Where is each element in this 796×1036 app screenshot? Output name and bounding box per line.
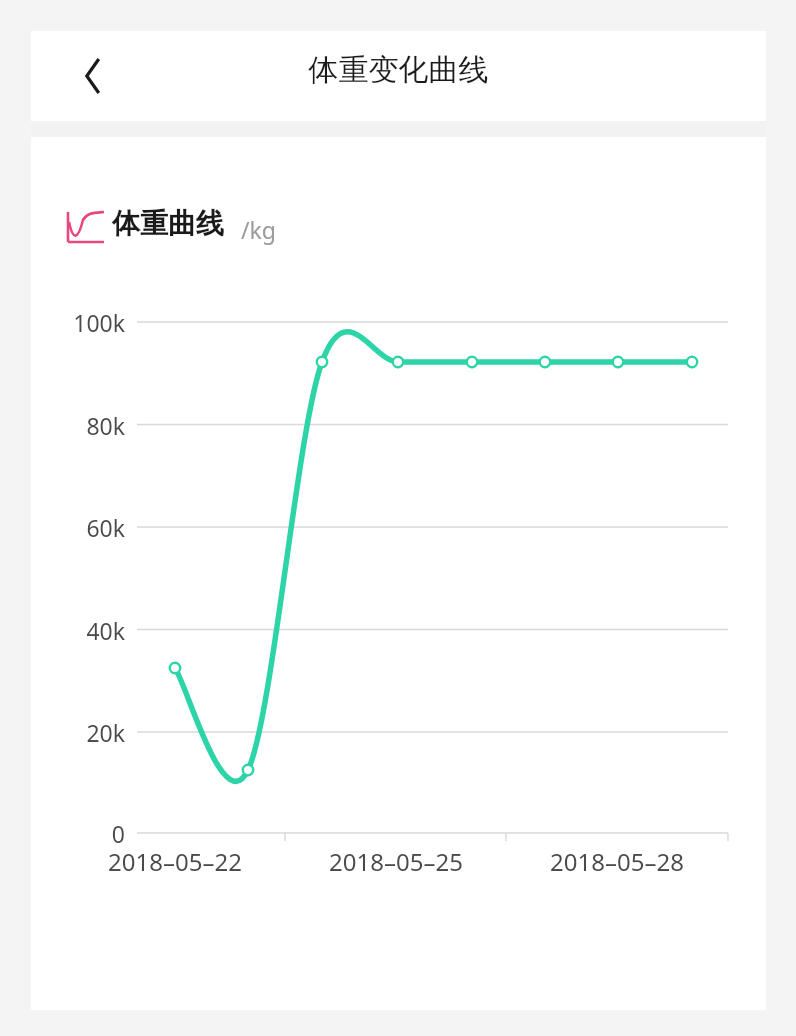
button[interactable]: Back	[55, 41, 125, 111]
staticText: 体重曲线	[112, 206, 224, 241]
staticText: 0	[45, 818, 125, 848]
staticText: /kg	[241, 214, 276, 245]
staticText: 体重变化曲线	[31, 51, 766, 141]
staticText: 60k	[45, 512, 125, 542]
staticText: 40k	[45, 615, 125, 645]
staticText: 2018–05–25	[286, 845, 506, 879]
staticText: 2018–05–28	[507, 845, 727, 879]
staticText: 2018–05–22	[65, 845, 285, 879]
staticText: 80k	[45, 410, 125, 440]
staticText: 20k	[45, 717, 125, 747]
staticText: 100k	[45, 307, 125, 337]
